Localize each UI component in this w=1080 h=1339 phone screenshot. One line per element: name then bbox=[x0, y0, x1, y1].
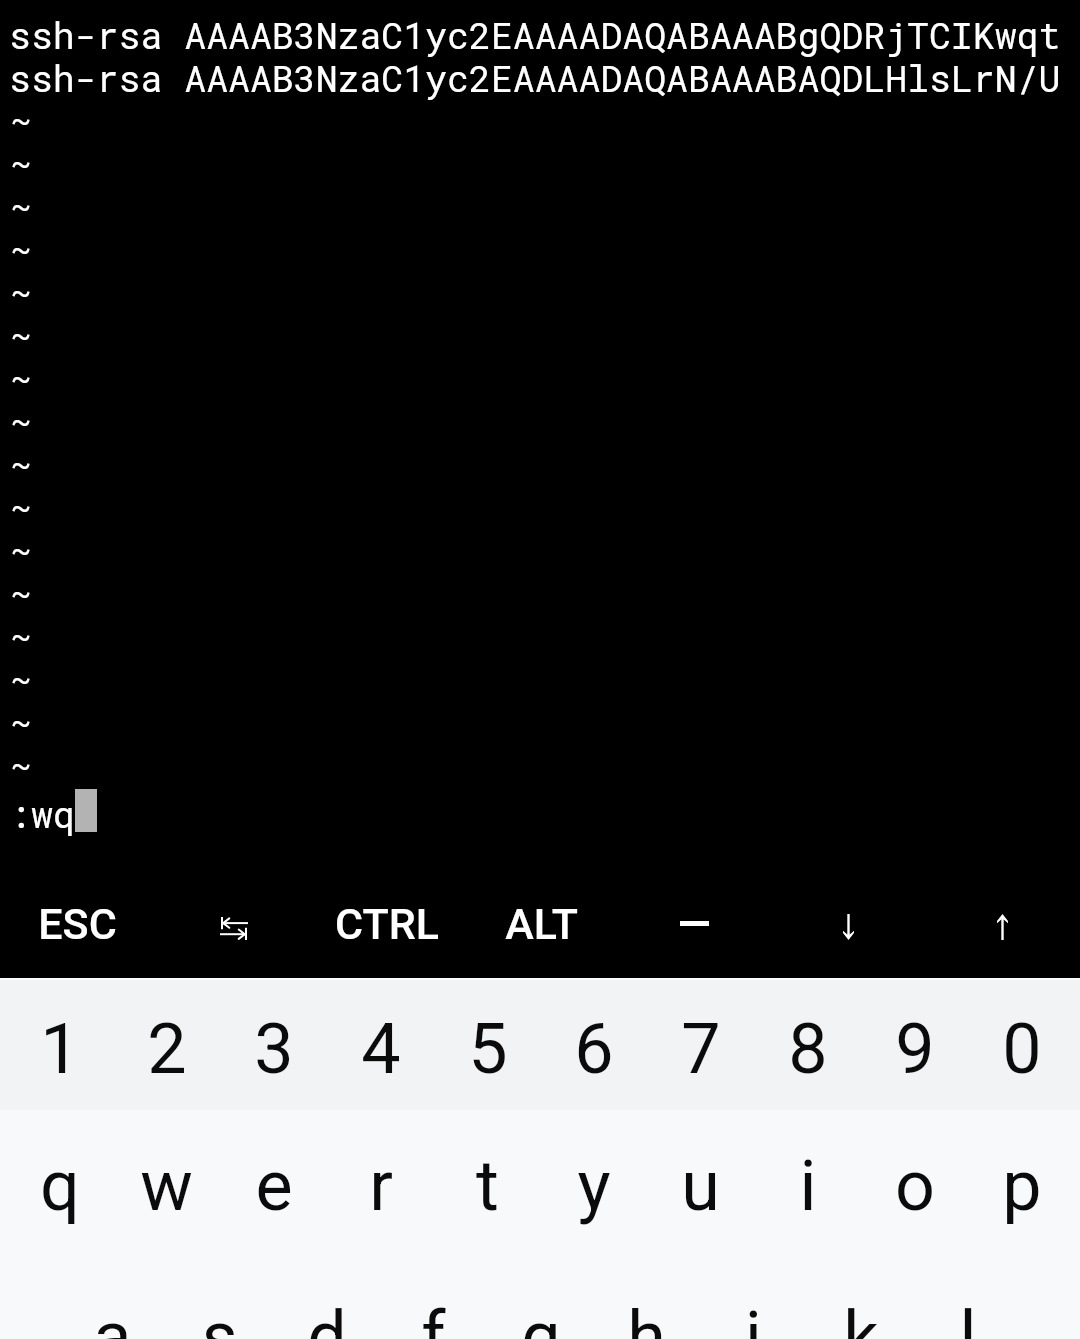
button[interactable]: 5 bbox=[434, 980, 541, 1110]
staticText: ~ bbox=[12, 229, 31, 269]
staticText: u bbox=[681, 1145, 720, 1227]
button[interactable]: 9 bbox=[861, 980, 968, 1110]
button[interactable]: q bbox=[6, 1110, 113, 1261]
button[interactable]: 1 bbox=[6, 980, 113, 1110]
staticText: ~ bbox=[12, 143, 31, 183]
staticText: 2 bbox=[147, 1008, 187, 1090]
staticText: k bbox=[843, 1296, 879, 1339]
staticText: 9 bbox=[895, 1008, 935, 1090]
button[interactable]: 2 bbox=[113, 980, 220, 1110]
staticText: o bbox=[895, 1145, 935, 1227]
button[interactable]: k bbox=[807, 1261, 914, 1339]
staticText: 6 bbox=[574, 1008, 614, 1090]
button[interactable]: t bbox=[434, 1110, 541, 1261]
staticText: d bbox=[307, 1296, 347, 1339]
button[interactable]: 0 bbox=[968, 980, 1075, 1110]
button[interactable]: 3 bbox=[220, 980, 327, 1110]
staticText: 4 bbox=[361, 1008, 401, 1090]
staticText: g bbox=[521, 1296, 561, 1339]
staticText: w bbox=[140, 1145, 193, 1227]
staticText: ssh-rsa AAAAB3NzaC1yc2EAAAADAQABAAABgQDR… bbox=[9, 11, 1061, 59]
staticText: ~ bbox=[12, 444, 31, 484]
button[interactable]: j bbox=[700, 1261, 807, 1339]
staticText: 1 bbox=[40, 1008, 80, 1090]
button[interactable]: 8 bbox=[754, 980, 861, 1110]
button[interactable]: f bbox=[380, 1261, 487, 1339]
button[interactable]: Minus bbox=[618, 868, 772, 978]
staticText: 5 bbox=[468, 1008, 508, 1090]
staticText: a bbox=[93, 1296, 132, 1339]
staticText: t bbox=[476, 1145, 499, 1227]
staticText: i bbox=[799, 1145, 817, 1227]
staticText: ~ bbox=[12, 272, 31, 312]
staticText: :wq bbox=[9, 790, 75, 838]
staticText: 8 bbox=[788, 1008, 828, 1090]
button[interactable]: Tab bbox=[155, 868, 310, 978]
staticText: s bbox=[201, 1296, 238, 1339]
staticText: ~ bbox=[12, 358, 31, 398]
button[interactable]: ALT bbox=[464, 868, 618, 978]
button[interactable]: 6 bbox=[540, 980, 647, 1110]
button[interactable]: u bbox=[647, 1110, 754, 1261]
staticText: ssh-rsa AAAAB3NzaC1yc2EAAAADAQABAAABAQDL… bbox=[9, 54, 1061, 102]
button[interactable]: ESC bbox=[0, 868, 155, 978]
button[interactable]: 7 bbox=[647, 980, 754, 1110]
staticText: h bbox=[627, 1296, 666, 1339]
button[interactable]: CTRL bbox=[310, 868, 464, 978]
staticText: 3 bbox=[254, 1008, 294, 1090]
staticText: ALT bbox=[505, 899, 578, 949]
staticText: ~ bbox=[12, 616, 31, 656]
button[interactable]: 4 bbox=[327, 980, 434, 1110]
staticText: 7 bbox=[681, 1008, 721, 1090]
staticText: ESC bbox=[38, 899, 117, 949]
staticText: ~ bbox=[12, 573, 31, 613]
button[interactable]: i bbox=[754, 1110, 861, 1261]
staticText: ~ bbox=[12, 100, 31, 140]
staticText: ~ bbox=[12, 702, 31, 742]
staticText: ~ bbox=[12, 745, 31, 785]
staticText: ~ bbox=[12, 487, 31, 527]
staticText: e bbox=[255, 1145, 293, 1227]
button[interactable]: d bbox=[273, 1261, 380, 1339]
staticText: CTRL bbox=[335, 899, 439, 949]
button[interactable]: s bbox=[166, 1261, 273, 1339]
staticText: ~ bbox=[12, 659, 31, 699]
button[interactable]: o bbox=[861, 1110, 968, 1261]
staticText: ~ bbox=[12, 530, 31, 570]
staticText: f bbox=[421, 1296, 446, 1339]
staticText: j bbox=[745, 1296, 762, 1339]
button[interactable]: r bbox=[327, 1110, 434, 1261]
button[interactable]: w bbox=[113, 1110, 220, 1261]
staticText: 0 bbox=[1002, 1008, 1042, 1090]
button[interactable]: Arrow up bbox=[926, 868, 1080, 978]
staticText: r bbox=[369, 1145, 393, 1227]
button[interactable]: p bbox=[968, 1110, 1075, 1261]
staticText: ~ bbox=[12, 186, 31, 226]
button[interactable]: y bbox=[540, 1110, 647, 1261]
staticText: q bbox=[40, 1145, 80, 1227]
staticText: l bbox=[959, 1296, 977, 1339]
staticText: y bbox=[577, 1145, 611, 1227]
button[interactable]: Arrow down bbox=[772, 868, 926, 978]
button[interactable]: g bbox=[487, 1261, 594, 1339]
button[interactable]: a bbox=[59, 1261, 166, 1339]
staticText: ~ bbox=[12, 315, 31, 355]
button[interactable]: e bbox=[220, 1110, 327, 1261]
button[interactable]: l bbox=[914, 1261, 1021, 1339]
staticText: ~ bbox=[12, 401, 31, 441]
button[interactable]: h bbox=[593, 1261, 700, 1339]
staticText: p bbox=[1002, 1145, 1042, 1227]
